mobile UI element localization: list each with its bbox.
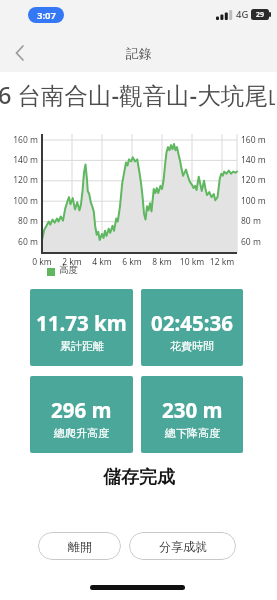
staticText: 分享成就 [159,539,207,554]
staticText: 160 m [2,134,38,146]
button[interactable] [6,40,34,66]
staticText: 100 m [2,195,38,207]
staticText: 10 km [178,256,206,268]
staticText: 60 m [2,236,38,248]
staticText: 160 m [241,134,275,146]
staticText: 離開 [68,539,92,554]
staticText: 230 m [162,396,223,424]
button[interactable]: 02:45:36 [141,289,243,366]
staticText: 120 m [241,174,275,186]
button[interactable]: 離開 [38,532,121,560]
button[interactable]: 分享成就 [129,532,236,560]
staticText: 記錄 [126,45,152,61]
staticText: 296 m [51,396,112,424]
button[interactable]: 230 m [141,376,243,453]
staticText: 100 m [241,195,275,207]
staticText: 4 km [88,256,116,268]
staticText: 累計距離 [60,339,104,353]
staticText: 120 m [2,174,38,186]
staticText: 8 km [148,256,176,268]
staticText: 高度 [59,264,78,276]
staticText: 4G [236,8,249,21]
staticText: 總爬升高度 [54,426,109,440]
staticText: 總下降高度 [165,426,220,440]
staticText: 80 m [241,215,275,227]
staticText: 80 m [2,215,38,227]
staticText: 02:45:36 [151,309,233,337]
staticText: 儲存完成 [103,466,175,489]
staticText: 140 m [2,154,38,166]
staticText: 花費時間 [170,339,214,353]
staticText: 60 m [241,236,275,248]
staticText: 29 [256,10,265,20]
staticText: 6 km [118,256,146,268]
staticText: 11.73 km [36,309,127,337]
staticText: 2 km [58,256,86,268]
staticText: 6 台南合山-觀音山-大坑尾山 [0,79,275,111]
button[interactable]: 11.73 km [30,289,133,366]
staticText: 3:07 [37,9,56,22]
staticText: 12 km [208,256,236,268]
button[interactable]: 296 m [30,376,133,453]
staticText: 0 km [28,256,56,268]
staticText: 140 m [241,154,275,166]
